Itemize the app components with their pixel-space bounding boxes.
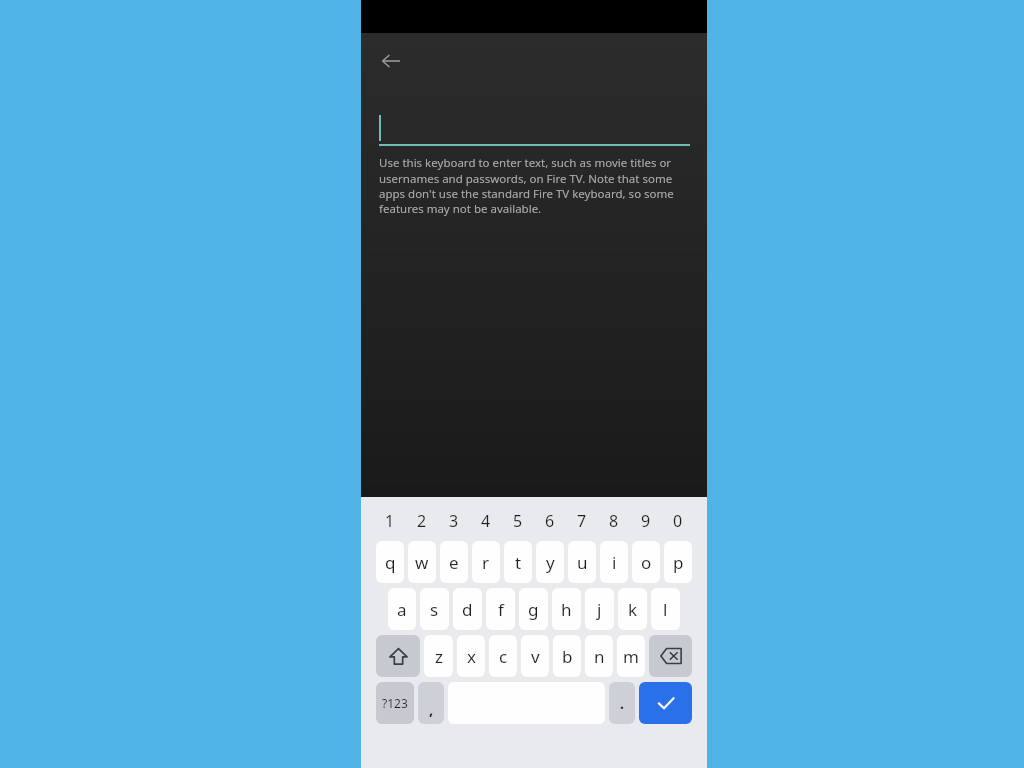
button[interactable]: Enter xyxy=(639,682,692,724)
staticText: q xyxy=(385,551,396,574)
staticText: n xyxy=(594,645,605,668)
staticText: 4 xyxy=(481,510,491,532)
button[interactable]: 8 xyxy=(598,505,630,537)
staticText: . xyxy=(620,694,624,713)
staticText: h xyxy=(561,598,572,621)
button[interactable]: e xyxy=(440,541,468,583)
staticText: w xyxy=(415,551,429,574)
button[interactable]: Back xyxy=(371,41,411,81)
staticText: 1 xyxy=(385,510,395,532)
staticText: v xyxy=(531,645,540,668)
button[interactable]: 1 xyxy=(374,505,406,537)
staticText: j xyxy=(597,598,602,621)
button[interactable]: a xyxy=(388,588,416,630)
staticText: 7 xyxy=(577,510,587,532)
staticText: z xyxy=(435,645,443,668)
staticText: a xyxy=(397,598,407,621)
button[interactable] xyxy=(379,111,690,147)
button[interactable]: Backspace xyxy=(649,635,692,677)
button[interactable]: z xyxy=(424,635,453,677)
button[interactable]: w xyxy=(408,541,436,583)
staticText: 5 xyxy=(513,510,523,532)
staticText: Use this keyboard to enter text, such as… xyxy=(379,155,690,216)
staticText: p xyxy=(673,551,684,574)
button[interactable]: h xyxy=(552,588,581,630)
staticText: 9 xyxy=(641,510,651,532)
staticText: ?123 xyxy=(382,695,408,711)
button[interactable]: t xyxy=(504,541,532,583)
button[interactable]: g xyxy=(519,588,548,630)
button[interactable]: 2 xyxy=(406,505,438,537)
button[interactable]: p xyxy=(664,541,692,583)
button[interactable]: l xyxy=(651,588,680,630)
staticText: o xyxy=(641,551,652,574)
staticText: y xyxy=(546,551,555,574)
button[interactable]: i xyxy=(600,541,628,583)
staticText: k xyxy=(628,598,638,621)
staticText: i xyxy=(612,551,617,574)
staticText: d xyxy=(462,598,473,621)
button[interactable]: c xyxy=(489,635,517,677)
staticText: t xyxy=(515,551,522,574)
staticText: r xyxy=(482,551,490,574)
button[interactable]: k xyxy=(618,588,647,630)
button[interactable]: y xyxy=(536,541,564,583)
staticText: b xyxy=(562,645,573,668)
button[interactable]: s xyxy=(420,588,449,630)
button[interactable]: 5 xyxy=(502,505,534,537)
button[interactable]: 3 xyxy=(438,505,470,537)
staticText: g xyxy=(528,598,539,621)
staticText: 2 xyxy=(417,510,427,532)
button[interactable]: 9 xyxy=(630,505,662,537)
staticText: f xyxy=(498,598,504,621)
button[interactable]: b xyxy=(553,635,581,677)
button[interactable]: 6 xyxy=(534,505,566,537)
staticText: c xyxy=(499,645,508,668)
button[interactable]: j xyxy=(585,588,614,630)
button[interactable]: u xyxy=(568,541,596,583)
button[interactable]: , xyxy=(418,682,444,724)
button[interactable]: x xyxy=(457,635,485,677)
button[interactable]: o xyxy=(632,541,660,583)
button[interactable]: 7 xyxy=(566,505,598,537)
staticText: , xyxy=(429,699,434,719)
button[interactable]: r xyxy=(472,541,500,583)
button[interactable]: ?123 xyxy=(376,682,414,724)
button[interactable]: v xyxy=(521,635,549,677)
button[interactable]: 0 xyxy=(662,505,694,537)
staticText: 6 xyxy=(545,510,555,532)
button[interactable]: m xyxy=(617,635,645,677)
button[interactable]: q xyxy=(376,541,404,583)
button[interactable]: . xyxy=(609,682,635,724)
staticText: 3 xyxy=(449,510,459,532)
staticText: x xyxy=(467,645,476,668)
staticText: u xyxy=(577,551,588,574)
staticText: e xyxy=(449,551,459,574)
button[interactable]: f xyxy=(486,588,515,630)
staticText: s xyxy=(430,598,439,621)
button[interactable]: 4 xyxy=(470,505,502,537)
button[interactable]: Shift xyxy=(376,635,420,677)
staticText: l xyxy=(663,598,668,621)
staticText: 8 xyxy=(609,510,619,532)
staticText: 0 xyxy=(673,510,683,532)
button[interactable]: d xyxy=(453,588,482,630)
staticText: m xyxy=(623,645,639,668)
button[interactable]: n xyxy=(585,635,613,677)
